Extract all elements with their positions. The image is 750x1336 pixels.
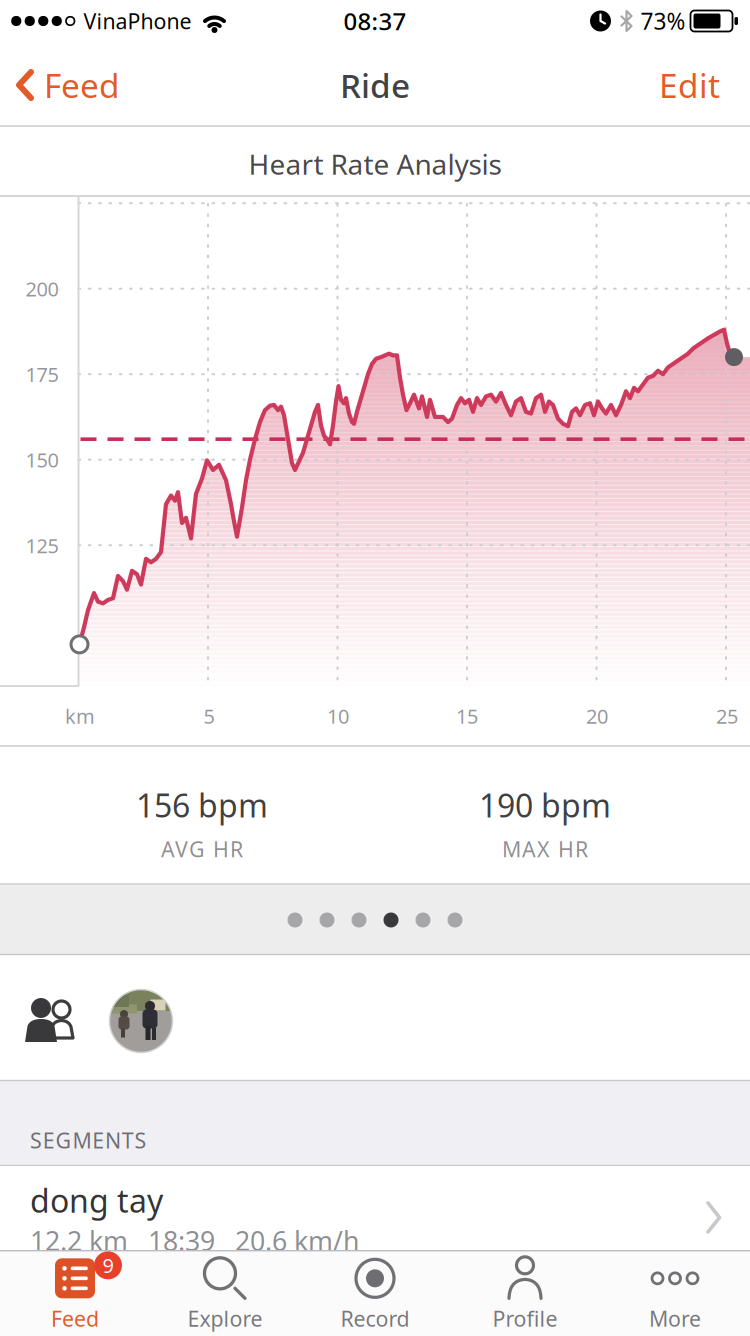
staticText: Explore (187, 1304, 262, 1333)
staticText: Record (340, 1304, 409, 1333)
button[interactable]: Athlete photo (109, 989, 172, 1052)
button[interactable]: Profile (450, 1250, 600, 1336)
staticText: 73% (640, 6, 685, 36)
staticText: Ride (340, 63, 410, 107)
button[interactable]: Explore (150, 1250, 300, 1336)
staticText: 175 (25, 361, 58, 388)
staticText: Edit (659, 63, 720, 107)
staticText: Feed (51, 1304, 99, 1333)
staticText: Profile (492, 1304, 557, 1333)
staticText: 15 (456, 703, 478, 729)
staticText: 125 (25, 532, 58, 559)
staticText: VinaPhone (83, 7, 191, 35)
button[interactable]: Edit (659, 44, 750, 126)
staticText: dong tay (30, 1179, 163, 1221)
staticText: 08:37 (343, 5, 406, 37)
staticText: 5 (203, 703, 214, 729)
button[interactable]: More (600, 1250, 750, 1336)
staticText: 25 (716, 703, 738, 729)
staticText: 12.2 km (30, 1223, 128, 1258)
staticText: 156 bpm (136, 784, 268, 826)
staticText: Feed (44, 63, 120, 107)
staticText: km (65, 703, 95, 729)
button[interactable]: Feed (0, 1250, 150, 1336)
staticText: 10 (327, 703, 349, 729)
button[interactable]: Kudos (25, 998, 85, 1044)
staticText: 20.6 km/h (235, 1223, 359, 1258)
staticText: MAX HR (502, 835, 588, 863)
staticText: Heart Rate Analysis (248, 145, 501, 183)
staticText: SEGMENTS (30, 1126, 147, 1154)
staticText: 190 bpm (479, 784, 611, 826)
staticText: 200 (25, 275, 58, 302)
button[interactable]: Record (300, 1250, 450, 1336)
staticText: 18:39 (148, 1223, 215, 1258)
staticText: 20 (586, 703, 608, 729)
staticText: 150 (25, 446, 58, 473)
staticText: More (649, 1304, 701, 1333)
button[interactable]: Feed (0, 44, 120, 126)
staticText: 9 (102, 1252, 113, 1279)
staticText: AVG HR (161, 835, 243, 863)
button[interactable]: dong tay (0, 1166, 750, 1250)
